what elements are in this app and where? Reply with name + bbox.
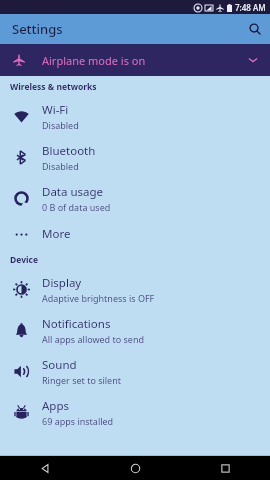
staticText: Sound bbox=[42, 357, 77, 373]
staticText: 69 apps installed bbox=[42, 415, 114, 427]
staticText: All apps allowed to send bbox=[42, 333, 145, 345]
button[interactable]: Bluetooth bbox=[0, 137, 270, 178]
staticText: More bbox=[42, 226, 71, 242]
staticText: Adaptive brightness is OFF bbox=[42, 292, 155, 304]
staticText: Disabled bbox=[42, 160, 79, 172]
button[interactable]: Apps bbox=[0, 392, 270, 433]
button[interactable]: Wi-Fi bbox=[0, 96, 270, 137]
button[interactable]: Recents bbox=[180, 456, 270, 480]
button[interactable]: Sound bbox=[0, 351, 270, 392]
staticText: Bluetooth bbox=[42, 143, 96, 159]
staticText: Settings bbox=[12, 20, 63, 38]
staticText: Wireless & networks bbox=[10, 81, 97, 93]
staticText: 7:48 AM bbox=[235, 2, 266, 13]
button[interactable]: Airplane mode is on bbox=[0, 44, 270, 76]
button[interactable]: Home bbox=[90, 456, 180, 480]
button[interactable]: Search bbox=[240, 14, 270, 44]
button[interactable]: Back bbox=[0, 456, 90, 480]
staticText: Apps bbox=[42, 398, 70, 414]
button[interactable]: Data usage bbox=[0, 178, 270, 219]
button[interactable]: More bbox=[0, 219, 270, 249]
staticText: Display bbox=[42, 275, 82, 291]
button[interactable]: Notifications bbox=[0, 310, 270, 351]
staticText: Device bbox=[10, 254, 38, 266]
staticText: Ringer set to silent bbox=[42, 374, 122, 386]
staticText: Disabled bbox=[42, 119, 79, 131]
staticText: 0 B of data used bbox=[42, 201, 111, 213]
staticText: Data usage bbox=[42, 184, 104, 200]
staticText: Wi-Fi bbox=[42, 102, 69, 118]
staticText: Notifications bbox=[42, 316, 111, 332]
staticText: Airplane mode is on bbox=[42, 53, 146, 68]
button[interactable]: Display bbox=[0, 269, 270, 310]
